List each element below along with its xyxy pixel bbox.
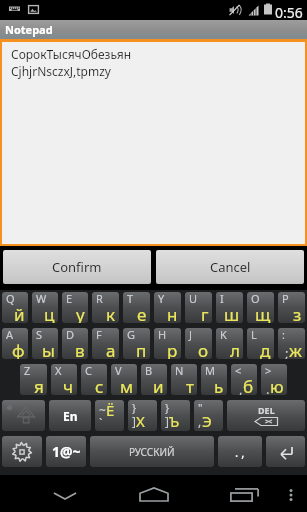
staticText: C (85, 364, 92, 378)
staticText: д (260, 339, 271, 359)
staticText: н (167, 303, 178, 323)
staticText: } (165, 400, 170, 415)
button[interactable]: C (81, 364, 107, 395)
staticText: ь (214, 375, 224, 395)
staticText: , (198, 413, 202, 429)
staticText: ц (44, 303, 55, 323)
staticText: ч (63, 375, 74, 395)
button[interactable]: Shift (2, 400, 45, 431)
button[interactable]: Cancel (156, 250, 304, 284)
button[interactable]: R (92, 292, 119, 323)
staticText: } (132, 400, 137, 415)
staticText: S (36, 328, 43, 342)
staticText: ы (42, 339, 55, 359)
staticText: 1@~ (52, 442, 81, 461)
staticText: " (198, 400, 203, 415)
staticText: G (127, 328, 136, 342)
button[interactable]: } (128, 400, 157, 431)
other: Screenshot (28, 5, 39, 14)
button[interactable]: } (161, 400, 190, 431)
staticText: L (251, 328, 257, 342)
staticText: е (137, 303, 147, 323)
staticText: р (167, 339, 178, 359)
staticText: у (76, 303, 85, 323)
button[interactable]: T (123, 292, 150, 323)
staticText: б (243, 375, 254, 395)
staticText: X (55, 364, 62, 378)
staticText: A (6, 328, 14, 342)
staticText: H (158, 328, 167, 342)
button[interactable]: B (141, 364, 167, 395)
button[interactable]: . , (218, 436, 262, 467)
staticText: а (106, 339, 116, 359)
staticText: Q (6, 292, 15, 306)
button[interactable]: > (261, 364, 287, 395)
other: Silent mode (229, 4, 240, 16)
button[interactable]: I (216, 292, 243, 323)
button[interactable]: S (32, 328, 58, 359)
staticText: Э (202, 411, 212, 431)
staticText: O (251, 292, 260, 306)
staticText: E (66, 292, 73, 306)
button[interactable]: K (216, 328, 243, 359)
staticText: РУССКИЙ (129, 445, 175, 459)
staticText: . (266, 380, 270, 395)
button[interactable]: H (154, 328, 181, 359)
button[interactable]: F (92, 328, 119, 359)
staticText: и (153, 375, 164, 395)
staticText: м (120, 375, 134, 395)
button[interactable]: M (201, 364, 227, 395)
staticText: . , (235, 444, 245, 460)
button[interactable]: P (278, 292, 305, 323)
button[interactable]: Settings (2, 436, 42, 467)
staticText: к (106, 303, 116, 323)
other: Input method (9, 6, 20, 12)
button[interactable]: : (278, 328, 305, 359)
button[interactable]: СорокТысячОбезьян (2, 42, 305, 244)
staticText: J (189, 328, 193, 342)
button[interactable]: ~ (95, 400, 124, 431)
button[interactable]: En (49, 400, 91, 431)
button[interactable]: G (123, 328, 150, 359)
staticText: F (96, 328, 102, 342)
button[interactable]: Recent apps (208, 475, 280, 512)
button[interactable]: < (231, 364, 257, 395)
button[interactable]: U (185, 292, 212, 323)
staticText: K (220, 328, 227, 342)
button[interactable]: Home (110, 475, 198, 512)
staticText: ] (165, 413, 169, 429)
staticText: ] (132, 413, 136, 429)
button[interactable]: Delete (227, 400, 305, 431)
button[interactable]: J (185, 328, 212, 359)
staticText: ш (224, 303, 240, 323)
button[interactable]: Z (20, 364, 47, 395)
staticText: Ъ (169, 411, 180, 431)
button[interactable]: Confirm (3, 250, 151, 284)
button[interactable]: L (247, 328, 274, 359)
button[interactable]: D (62, 328, 88, 359)
staticText: I (220, 292, 224, 306)
button[interactable]: O (247, 292, 274, 323)
staticText: й (14, 303, 25, 323)
button[interactable]: РУССКИЙ (90, 436, 214, 467)
button[interactable]: Y (154, 292, 181, 323)
staticText: о (198, 339, 209, 359)
staticText: Z (24, 364, 31, 378)
button[interactable]: A (2, 328, 28, 359)
button[interactable]: Enter (266, 436, 305, 467)
button[interactable]: Q (2, 292, 28, 323)
button[interactable]: X (51, 364, 77, 395)
staticText: Y (158, 292, 165, 306)
button[interactable]: N (171, 364, 197, 395)
button[interactable]: 1@~ (46, 436, 86, 467)
staticText: < (235, 364, 242, 378)
button[interactable]: More options (275, 475, 307, 512)
button[interactable]: V (111, 364, 137, 395)
staticText: ж (289, 339, 302, 359)
button[interactable]: " (194, 400, 223, 431)
staticText: ~ (99, 402, 106, 418)
staticText: Cancel (210, 258, 251, 276)
button[interactable]: Hide keyboard (21, 475, 109, 512)
button[interactable]: W (32, 292, 58, 323)
button[interactable]: E (62, 292, 88, 323)
